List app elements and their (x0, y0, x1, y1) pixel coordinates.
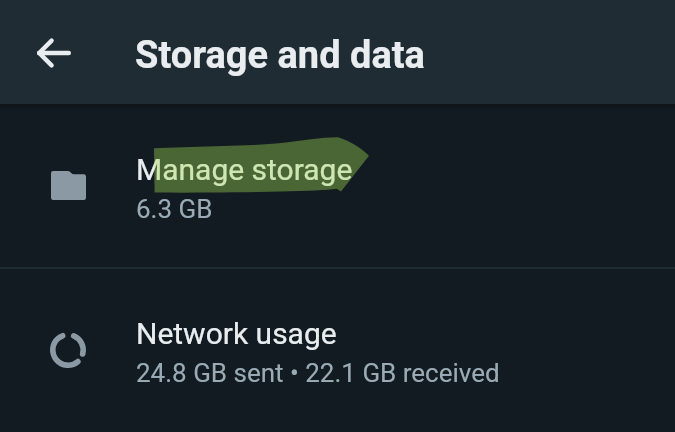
staticText: Manage storage (136, 152, 353, 187)
button[interactable]: Network usage, 24.8 GB sent • 22.1 GB re… (0, 268, 675, 431)
button[interactable]: Manage storage, 6.3 GB (0, 104, 675, 267)
staticText: Storage and data (135, 33, 425, 78)
button[interactable]: Back (13, 12, 95, 94)
staticText: 6.3 GB (136, 194, 213, 224)
staticText: Network usage (136, 316, 337, 351)
staticText: 24.8 GB sent • 22.1 GB received (136, 358, 500, 388)
